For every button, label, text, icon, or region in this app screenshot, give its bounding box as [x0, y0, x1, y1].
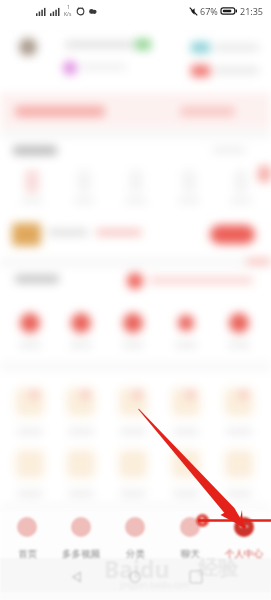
staticText: 经验: [198, 556, 238, 581]
button[interactable]: Home: [129, 571, 141, 583]
staticText: 1: [67, 4, 70, 11]
staticText: jingyan.baidu.com: [120, 579, 190, 590]
staticText: 67%: [200, 5, 218, 17]
staticText: 1: [200, 515, 205, 526]
button[interactable]: 个人中心: [217, 516, 271, 562]
staticText: 21:35: [240, 5, 264, 17]
button[interactable]: 多多视频: [54, 516, 108, 562]
button[interactable]: Back: [71, 571, 83, 583]
other: Annotation arrow: [0, 0, 271, 600]
button[interactable]: 首页: [0, 516, 54, 562]
button[interactable]: 分类: [108, 516, 162, 562]
staticText: 个人中心: [225, 548, 263, 560]
button[interactable]: 1: [163, 516, 217, 562]
staticText: 分类: [126, 548, 145, 560]
staticText: 首页: [18, 548, 37, 560]
button[interactable]: Recents: [190, 571, 202, 583]
staticText: Baidu: [104, 553, 170, 584]
staticText: 聊天: [181, 548, 200, 560]
staticText: K/s: [64, 11, 72, 18]
staticText: 多多视频: [62, 548, 100, 560]
